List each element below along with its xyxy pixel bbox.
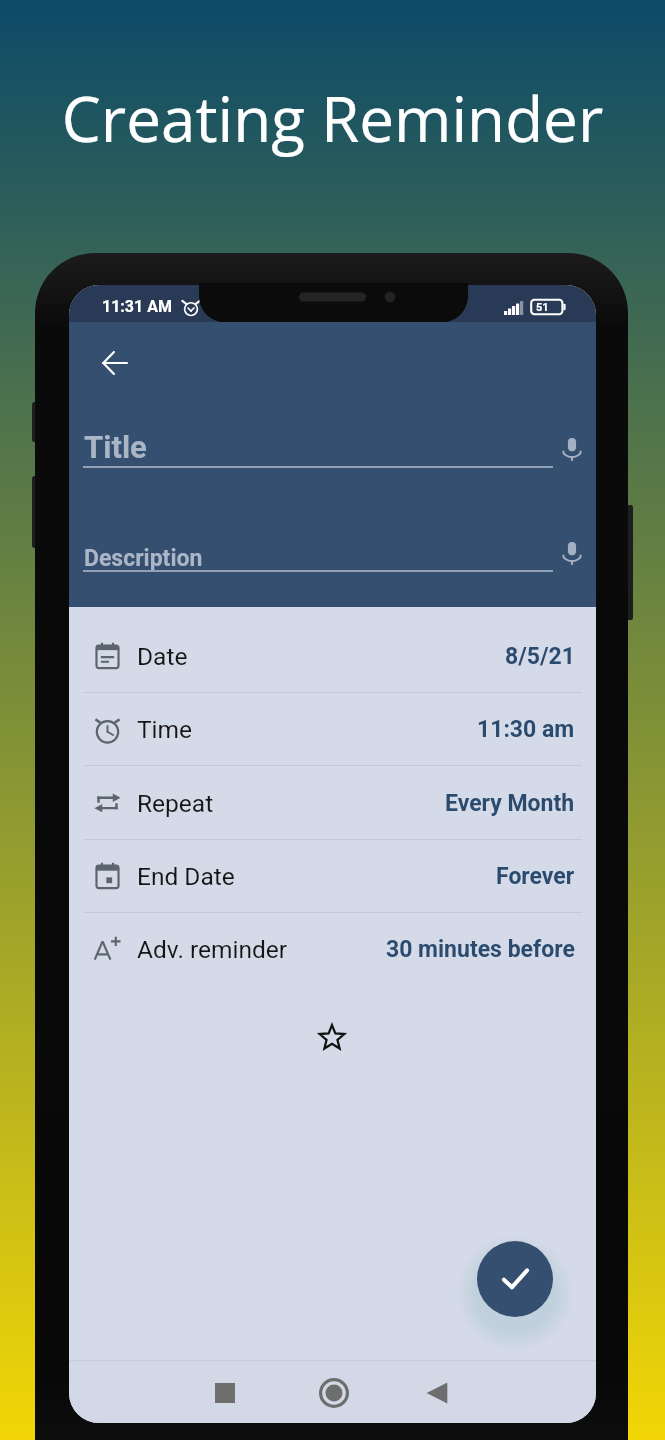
staticText: Description — [84, 545, 203, 572]
button[interactable]: Recent apps — [200, 1368, 250, 1418]
staticText: 30 minutes before — [386, 936, 575, 963]
button[interactable]: Back — [412, 1368, 462, 1418]
button[interactable]: Adv. reminder — [69, 913, 596, 986]
button[interactable]: Voice input — [549, 426, 595, 472]
staticText: Creating Reminder — [0, 76, 665, 160]
button[interactable]: Home — [309, 1368, 359, 1418]
staticText: Repeat — [137, 789, 214, 818]
staticText: Adv. reminder — [137, 935, 288, 964]
staticText: Date — [137, 642, 188, 671]
staticText: Title — [84, 429, 147, 465]
button[interactable]: Date — [69, 607, 596, 693]
staticText: 51 — [536, 301, 549, 314]
button[interactable]: Voice input — [549, 530, 595, 576]
staticText: Time — [137, 715, 193, 744]
staticText: 8/5/21 — [505, 643, 575, 670]
button[interactable]: Time — [69, 693, 596, 766]
button[interactable]: Favourite — [319, 1024, 345, 1050]
staticText: End Date — [137, 862, 235, 891]
button[interactable]: Save reminder — [477, 1241, 553, 1317]
button[interactable]: Back — [92, 340, 138, 386]
staticText: 11:31 AM — [102, 297, 172, 316]
staticText: 11:30 am — [477, 716, 575, 743]
button[interactable]: Repeat — [69, 766, 596, 840]
button[interactable]: End Date — [69, 840, 596, 913]
staticText: Forever — [496, 863, 575, 890]
staticText: Every Month — [445, 790, 575, 817]
